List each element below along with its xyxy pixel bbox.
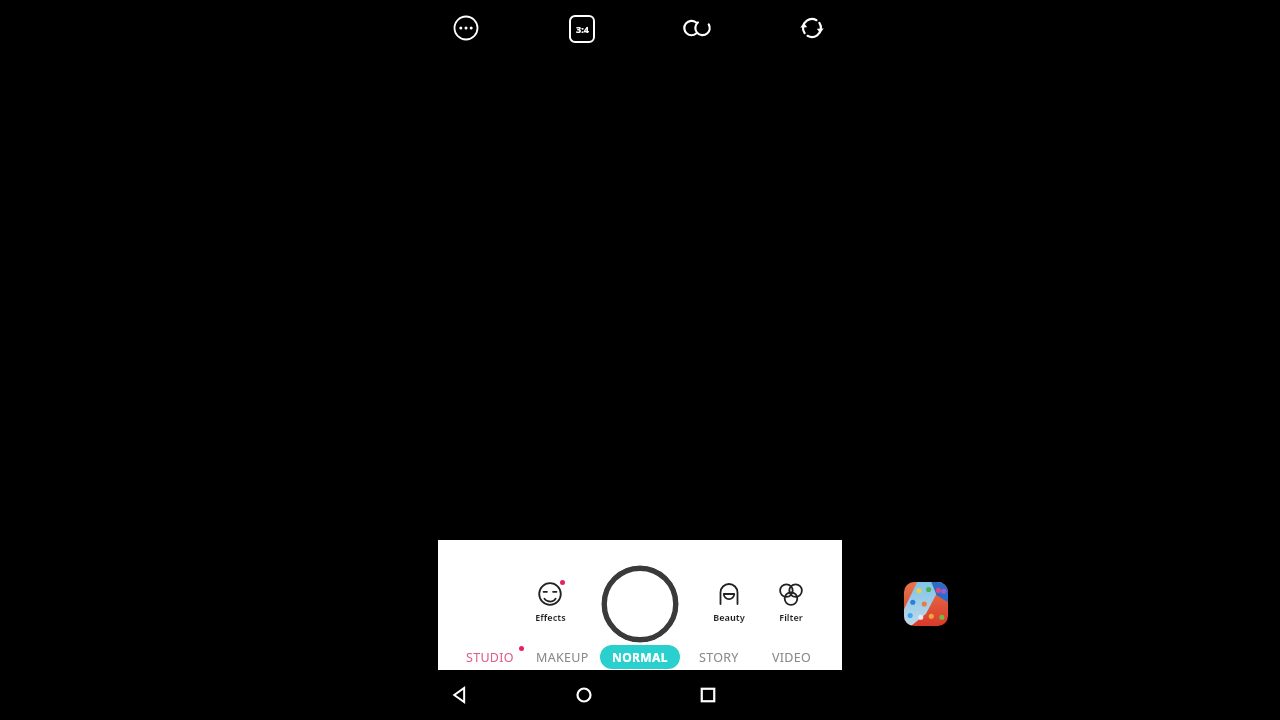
staticText: VIDEO: [772, 649, 812, 666]
button[interactable]: Beauty: [702, 580, 756, 632]
button[interactable]: Continuous shot: [680, 11, 714, 45]
button[interactable]: Home: [564, 675, 604, 715]
staticText: 3:4: [576, 23, 589, 35]
staticText: Beauty: [713, 611, 745, 623]
button[interactable]: NORMAL: [600, 645, 680, 669]
staticText: MAKEUP: [536, 649, 589, 666]
staticText: STORY: [699, 649, 739, 666]
button[interactable]: Effects: [523, 580, 577, 632]
button[interactable]: Filter: [764, 580, 818, 632]
button[interactable]: STORY: [682, 645, 755, 669]
button[interactable]: Back: [440, 675, 480, 715]
button[interactable]: Gallery: [904, 582, 948, 626]
button[interactable]: VIDEO: [755, 645, 828, 669]
staticText: STUDIO: [466, 649, 514, 666]
staticText: Filter: [779, 611, 803, 623]
button[interactable]: Recent apps: [688, 675, 728, 715]
button[interactable]: Shutter: [601, 565, 679, 643]
button[interactable]: MAKEUP: [526, 645, 598, 669]
staticText: NORMAL: [612, 649, 668, 665]
button[interactable]: Aspect ratio 3:4: [569, 15, 595, 43]
staticText: Effects: [535, 611, 566, 623]
button[interactable]: Switch camera: [795, 11, 829, 45]
button[interactable]: More options: [449, 11, 483, 45]
button[interactable]: STUDIO: [454, 645, 526, 669]
